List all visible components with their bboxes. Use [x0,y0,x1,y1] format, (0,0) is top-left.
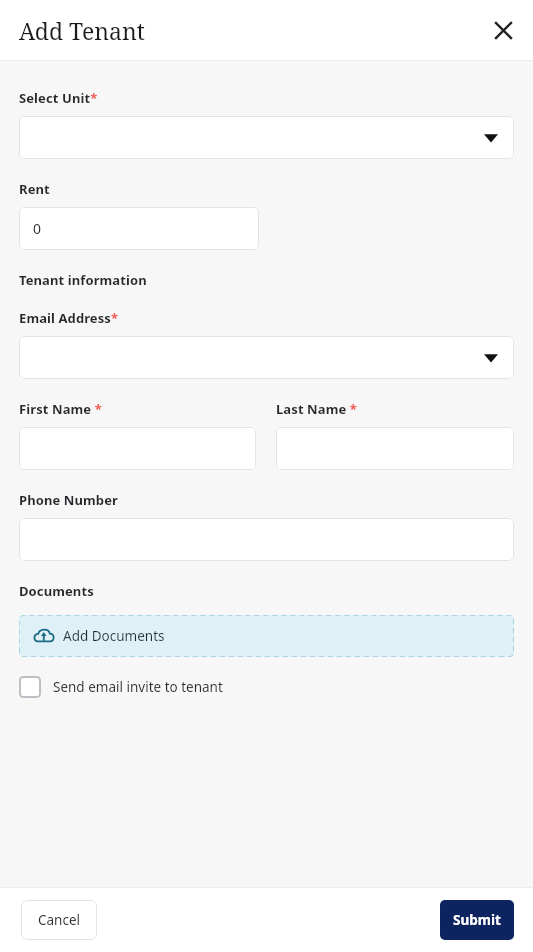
staticText: Rent [19,180,50,198]
staticText: Submit [453,911,501,929]
button[interactable]: Phone Number [19,518,514,561]
button[interactable]: Submit [440,900,514,940]
staticText: Cancel [38,911,81,929]
staticText: Send email invite to tenant [53,678,223,696]
button[interactable]: Rent [19,207,259,250]
staticText: 0 [33,219,42,238]
staticText: Documents [19,582,94,600]
staticText: First Name * [19,400,102,418]
staticText: Email Address* [19,309,119,327]
staticText: Tenant information [19,271,147,289]
button[interactable]: First Name [19,427,256,470]
button[interactable]: Send email invite to tenant [19,674,223,700]
staticText: Last Name * [276,400,357,418]
staticText: Add Documents [63,627,165,645]
staticText: Phone Number [19,491,118,509]
button[interactable]: Select Unit [19,116,514,159]
staticText: Select Unit* [19,89,98,107]
staticText: Add Tenant [19,15,145,46]
button[interactable]: Cancel [21,900,97,940]
button[interactable]: Email Address [19,336,514,379]
button[interactable]: Last Name [276,427,514,470]
button[interactable]: Add Documents [19,615,514,657]
button[interactable]: Close [489,16,517,44]
